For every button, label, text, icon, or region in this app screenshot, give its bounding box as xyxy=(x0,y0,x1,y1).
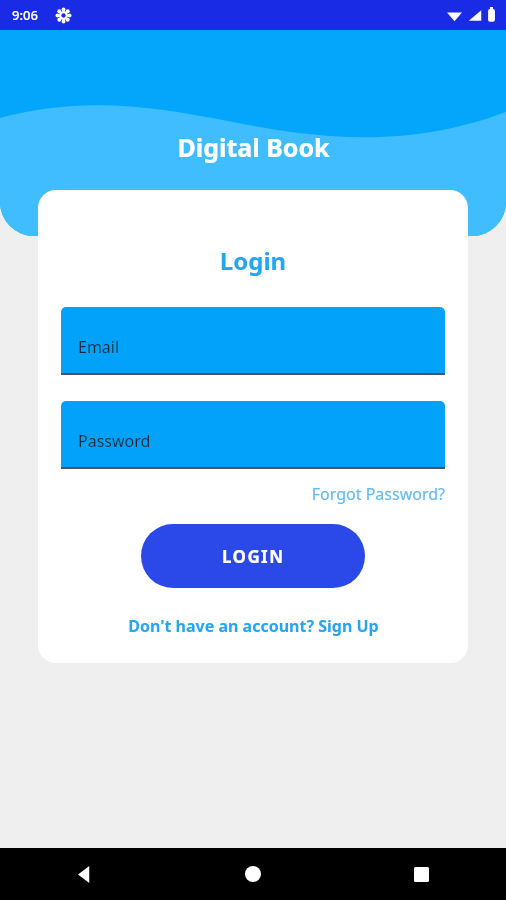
button[interactable]: Back xyxy=(0,848,168,900)
button[interactable]: LOGIN xyxy=(141,524,365,588)
button[interactable]: Email xyxy=(61,307,445,375)
button[interactable]: Forgot Password? xyxy=(38,483,445,505)
button[interactable]: Don't have an account? Sign Up xyxy=(38,615,468,637)
button[interactable]: Home xyxy=(168,848,337,900)
staticText: 9:06 xyxy=(12,6,38,24)
staticText: LOGIN xyxy=(222,545,285,568)
staticText: Login xyxy=(38,244,468,277)
staticText: Password xyxy=(78,430,151,452)
button[interactable]: Password xyxy=(61,401,445,469)
staticText: Don't have an account? Sign Up xyxy=(128,615,379,637)
staticText: Digital Book xyxy=(177,130,330,164)
button[interactable]: Recents xyxy=(337,848,506,900)
staticText: Email xyxy=(78,336,120,358)
